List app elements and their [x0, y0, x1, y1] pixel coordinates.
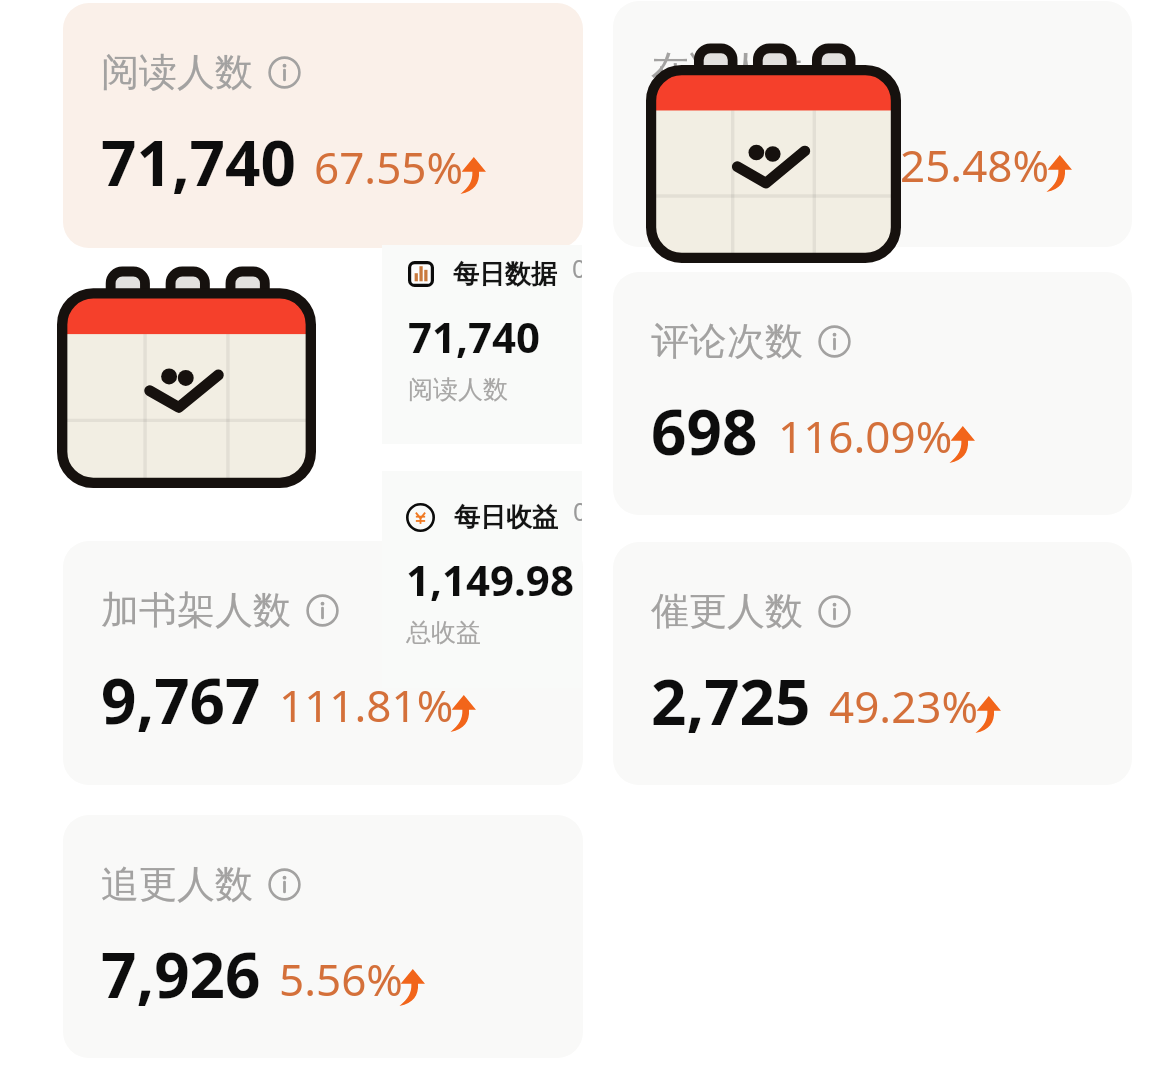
staticText: 5.56% — [279, 949, 403, 1009]
staticText: 698 — [651, 389, 758, 473]
staticText: 2,725 — [651, 659, 811, 743]
staticText: 67.55% — [314, 137, 464, 197]
staticText: 0 — [572, 251, 582, 285]
button[interactable]: 在读人数 — [613, 1, 1132, 247]
button[interactable]: 追更人数 — [63, 815, 583, 1058]
staticText: 111.81% — [279, 675, 454, 735]
staticText: 总收益 — [406, 617, 481, 648]
button[interactable]: 每日数据 — [408, 257, 582, 405]
staticText: 116.09% — [778, 406, 953, 466]
staticText: 追更人数 — [101, 860, 253, 908]
other: Calendar sticker — [646, 40, 901, 263]
staticText: 71,740 — [101, 120, 296, 204]
staticText: 9,767 — [101, 658, 261, 742]
staticText: 评论次数 — [651, 317, 803, 365]
staticText: 49.23% — [829, 676, 979, 736]
staticText: 71,740 — [408, 308, 541, 365]
button[interactable]: 加书架人数 — [63, 541, 583, 785]
staticText: 25.48% — [900, 135, 1050, 195]
staticText: 7,926 — [101, 932, 261, 1016]
staticText: 每日数据 — [453, 258, 557, 291]
staticText: 加书架人数 — [101, 586, 291, 634]
staticText: 0 — [573, 494, 582, 528]
staticText: 阅读人数 — [408, 374, 508, 405]
staticText: 在读人数 — [651, 46, 803, 94]
button[interactable]: 阅读人数 — [63, 3, 583, 248]
button[interactable]: 评论次数 — [613, 272, 1132, 515]
staticText: 催更人数 — [651, 587, 803, 635]
button[interactable]: 每日收益 — [406, 500, 582, 648]
staticText: 312,584 — [651, 118, 882, 202]
staticText: 1,149.98 — [406, 551, 574, 608]
staticText: 阅读人数 — [101, 48, 253, 96]
button[interactable]: 催更人数 — [613, 542, 1132, 785]
other: Calendar sticker — [57, 263, 316, 488]
staticText: 每日收益 — [454, 501, 558, 534]
